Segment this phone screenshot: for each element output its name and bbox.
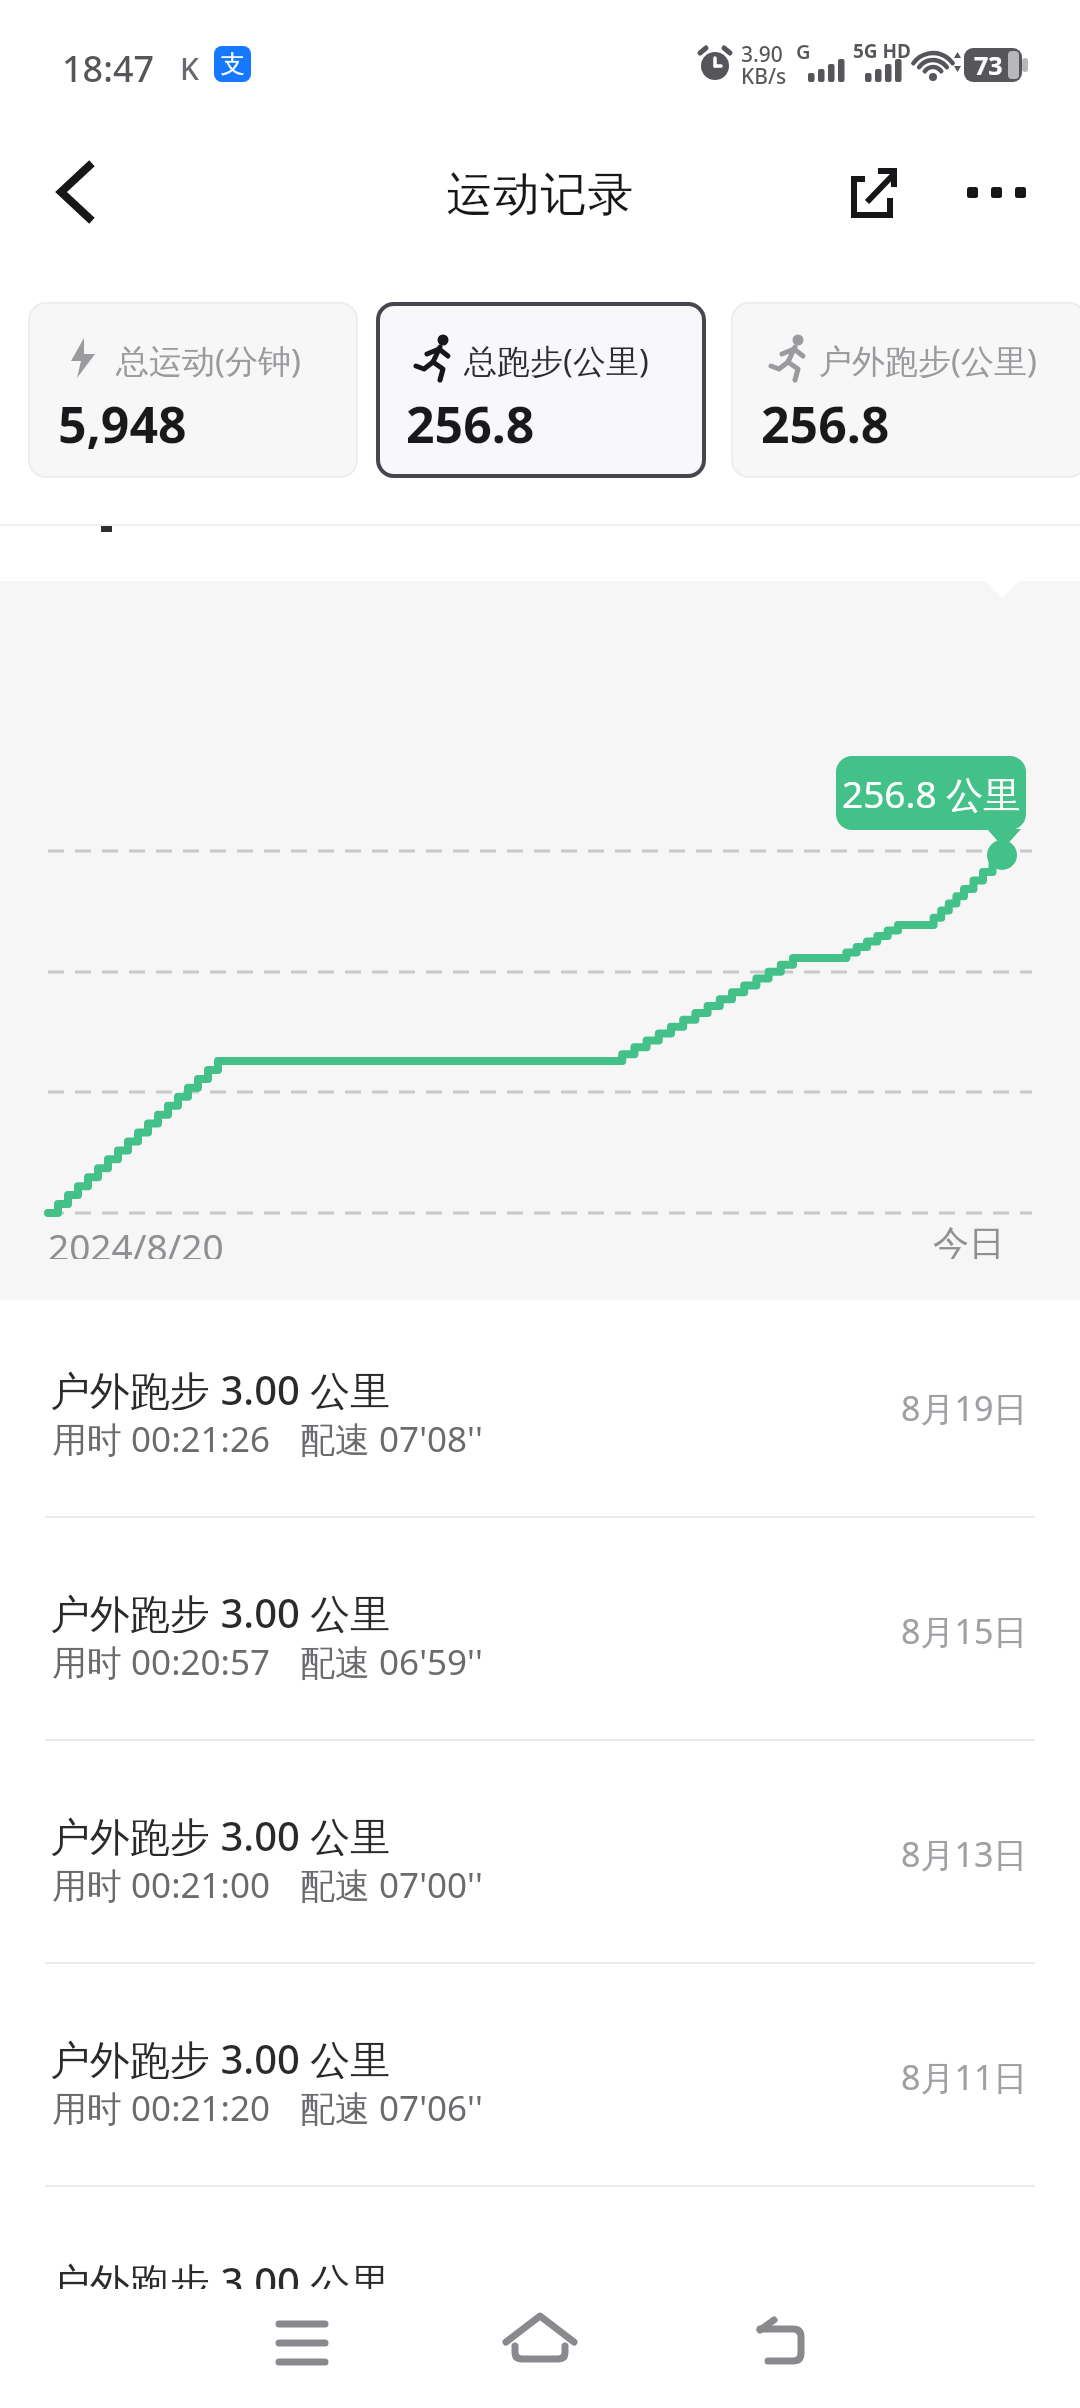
staticText: KB/s (741, 62, 787, 84)
staticText: G (796, 38, 811, 62)
button[interactable]: 户外跑步 3.00 公里 (0, 1300, 1080, 1523)
staticText: 用时 00:21:20 (52, 2084, 270, 2128)
button[interactable] (838, 158, 910, 228)
staticText: 户外跑步 3.00 公里 (50, 2254, 391, 2302)
staticText: 256.8 公里 (842, 768, 1021, 819)
button[interactable]: 户外跑步 3.00 公里 (0, 1523, 1080, 1746)
staticText: 用时 00:20:57 (52, 1638, 270, 1682)
button[interactable] (488, 2295, 592, 2391)
staticText: 配速 07'08'' (300, 1415, 483, 1459)
staticText: 256.8 (761, 390, 890, 456)
button[interactable] (729, 2295, 833, 2391)
staticText: 用时 00:21:26 (52, 1415, 270, 1459)
staticText: 户外跑步 3.00 公里 (50, 1808, 391, 1856)
staticText: 配速 06'59'' (300, 1638, 483, 1682)
staticText: 3.90 (741, 40, 783, 62)
button[interactable] (950, 158, 1040, 228)
staticText: 2024/8/20 (48, 1221, 224, 1259)
button[interactable]: 户外跑步 3.00 公里 (0, 1969, 1080, 2192)
staticText: 256.8 (406, 390, 535, 456)
staticText: 8月19日 (901, 1385, 1028, 1429)
button[interactable] (40, 150, 110, 234)
button[interactable] (250, 2295, 354, 2391)
staticText: 户外跑步(公里) (819, 338, 1037, 378)
staticText: 8月13日 (901, 1831, 1028, 1875)
staticText: K (180, 48, 199, 80)
staticText: 今日 (933, 1221, 1005, 1259)
staticText: 户外跑步 3.00 公里 (50, 1585, 391, 1633)
staticText: 18:47 (62, 44, 155, 82)
staticText: 5G HD (853, 38, 911, 62)
staticText: 支 (221, 49, 245, 79)
staticText: 用时 00:21:00 (52, 1861, 270, 1905)
staticText: 73 (974, 48, 1003, 82)
staticText: 5,948 (58, 390, 187, 456)
staticText: 配速 07'00'' (300, 1861, 483, 1905)
button[interactable]: 户外跑步 3.00 公里 (0, 1746, 1080, 1969)
staticText: 配速 07'06'' (300, 2084, 483, 2128)
staticText: 总跑步(公里) (464, 338, 649, 378)
button[interactable]: 总运动(分钟) (28, 302, 358, 478)
button[interactable]: 户外跑步 3.00 公里 (0, 2192, 1080, 2408)
staticText: 户外跑步 3.00 公里 (50, 2031, 391, 2079)
staticText: 8月11日 (901, 2054, 1028, 2098)
button[interactable]: 总跑步(公里) (376, 302, 706, 478)
staticText: 户外跑步 3.00 公里 (50, 1362, 391, 1410)
button[interactable]: 户外跑步(公里) (731, 302, 1080, 478)
staticText: 配速 07'03'' (300, 2307, 483, 2351)
staticText: 运动记录 (446, 166, 634, 224)
staticText: 8月15日 (901, 1608, 1028, 1652)
staticText: 总运动(分钟) (116, 338, 301, 378)
